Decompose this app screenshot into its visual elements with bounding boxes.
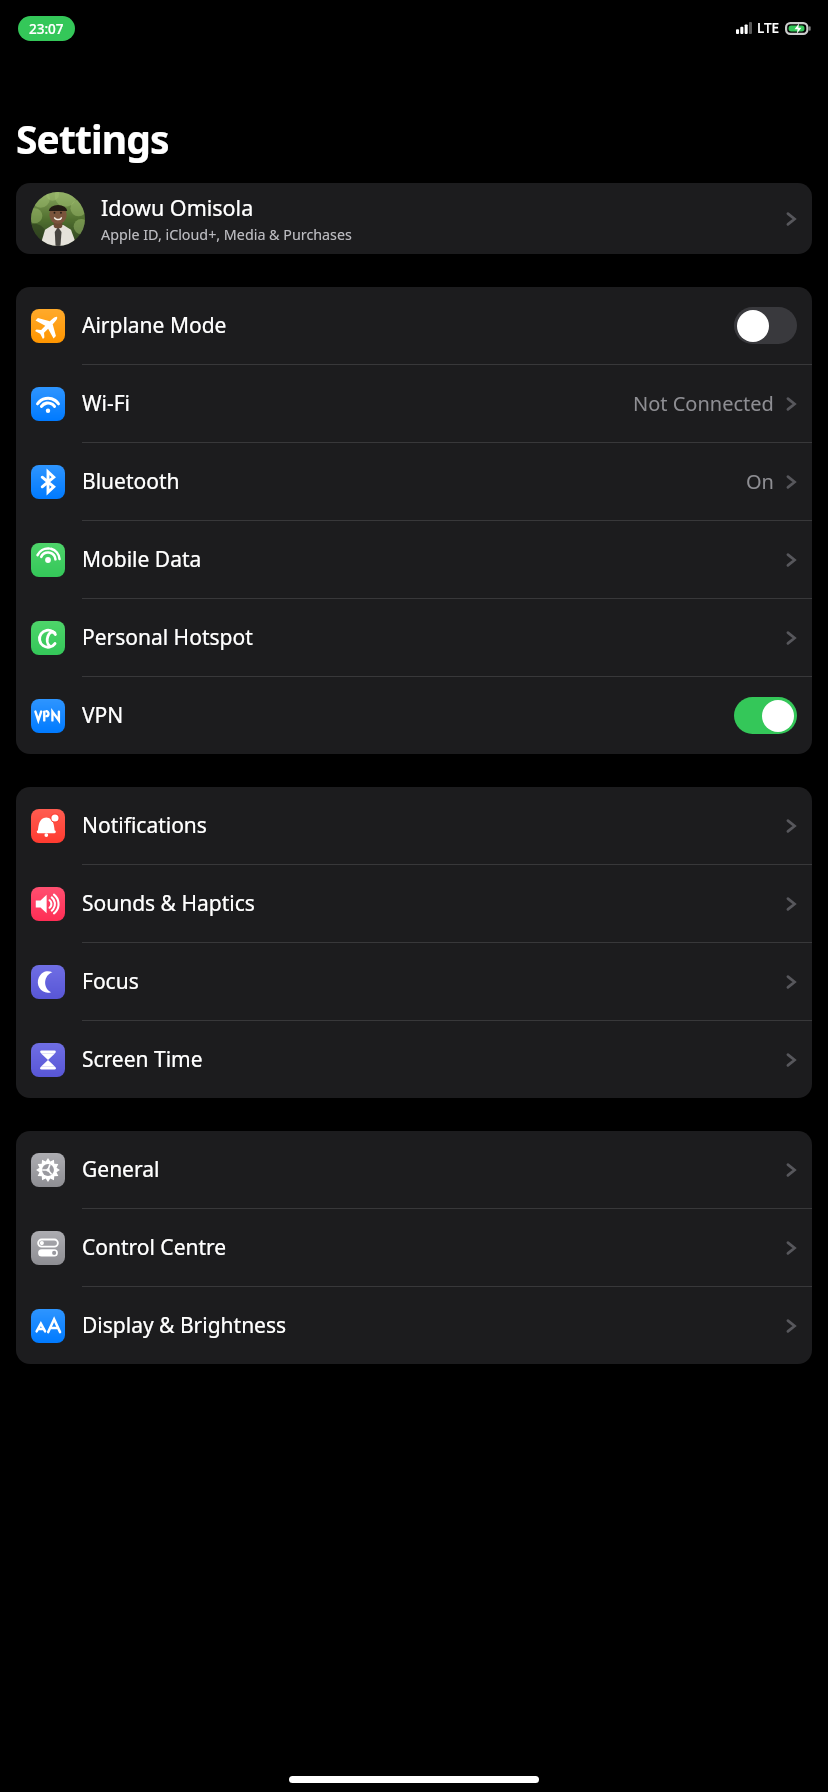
staticText: Mobile Data — [82, 545, 202, 574]
button[interactable]: Display & Brightness — [16, 1287, 812, 1364]
staticText: General — [82, 1155, 160, 1184]
staticText: Screen Time — [82, 1045, 203, 1074]
other: Open — [785, 972, 797, 992]
other: Open — [785, 816, 797, 836]
other: Open — [785, 894, 797, 914]
button[interactable]: Control Centre — [16, 1209, 812, 1286]
button[interactable]: Bluetooth — [16, 443, 812, 520]
staticText: Sounds & Haptics — [82, 889, 255, 918]
staticText: Notifications — [82, 811, 207, 840]
other: Open — [785, 628, 797, 648]
other: Open — [785, 1050, 797, 1070]
button[interactable]: Mobile Data — [16, 521, 812, 598]
button[interactable]: Focus — [16, 943, 812, 1020]
staticText: Apple ID, iCloud+, Media & Purchases — [101, 225, 352, 244]
staticText: Display & Brightness — [82, 1311, 287, 1340]
button[interactable]: Screen Time — [16, 1021, 812, 1098]
button[interactable]: Idowu Omisola — [16, 183, 812, 254]
staticText: On — [746, 468, 774, 495]
other: Open — [785, 472, 797, 492]
button[interactable]: Toggle off — [734, 307, 797, 344]
other: Open — [785, 1316, 797, 1336]
button[interactable]: Sounds & Haptics — [16, 865, 812, 942]
other: Open — [785, 209, 797, 229]
other: Open — [785, 394, 797, 414]
staticText: Bluetooth — [82, 467, 180, 496]
staticText: VPN — [82, 701, 124, 730]
staticText: LTE — [757, 19, 780, 37]
staticText: Focus — [82, 967, 139, 996]
button[interactable]: Notifications — [16, 787, 812, 864]
button[interactable]: Toggle on — [734, 697, 797, 734]
staticText: Control Centre — [82, 1233, 227, 1262]
other: Open — [785, 550, 797, 570]
staticText: Settings — [16, 112, 169, 165]
staticText: Wi-Fi — [82, 389, 131, 418]
other: Open — [785, 1238, 797, 1258]
button[interactable]: VPN — [16, 677, 812, 754]
button[interactable]: Personal Hotspot — [16, 599, 812, 676]
staticText: Idowu Omisola — [101, 193, 254, 222]
button[interactable]: Airplane Mode — [16, 287, 812, 364]
staticText: 23:07 — [29, 20, 64, 38]
button[interactable]: General — [16, 1131, 812, 1208]
staticText: Airplane Mode — [82, 311, 227, 340]
staticText: Personal Hotspot — [82, 623, 253, 652]
staticText: Not Connected — [633, 390, 774, 417]
button[interactable]: Wi-Fi — [16, 365, 812, 442]
other: Open — [785, 1160, 797, 1180]
